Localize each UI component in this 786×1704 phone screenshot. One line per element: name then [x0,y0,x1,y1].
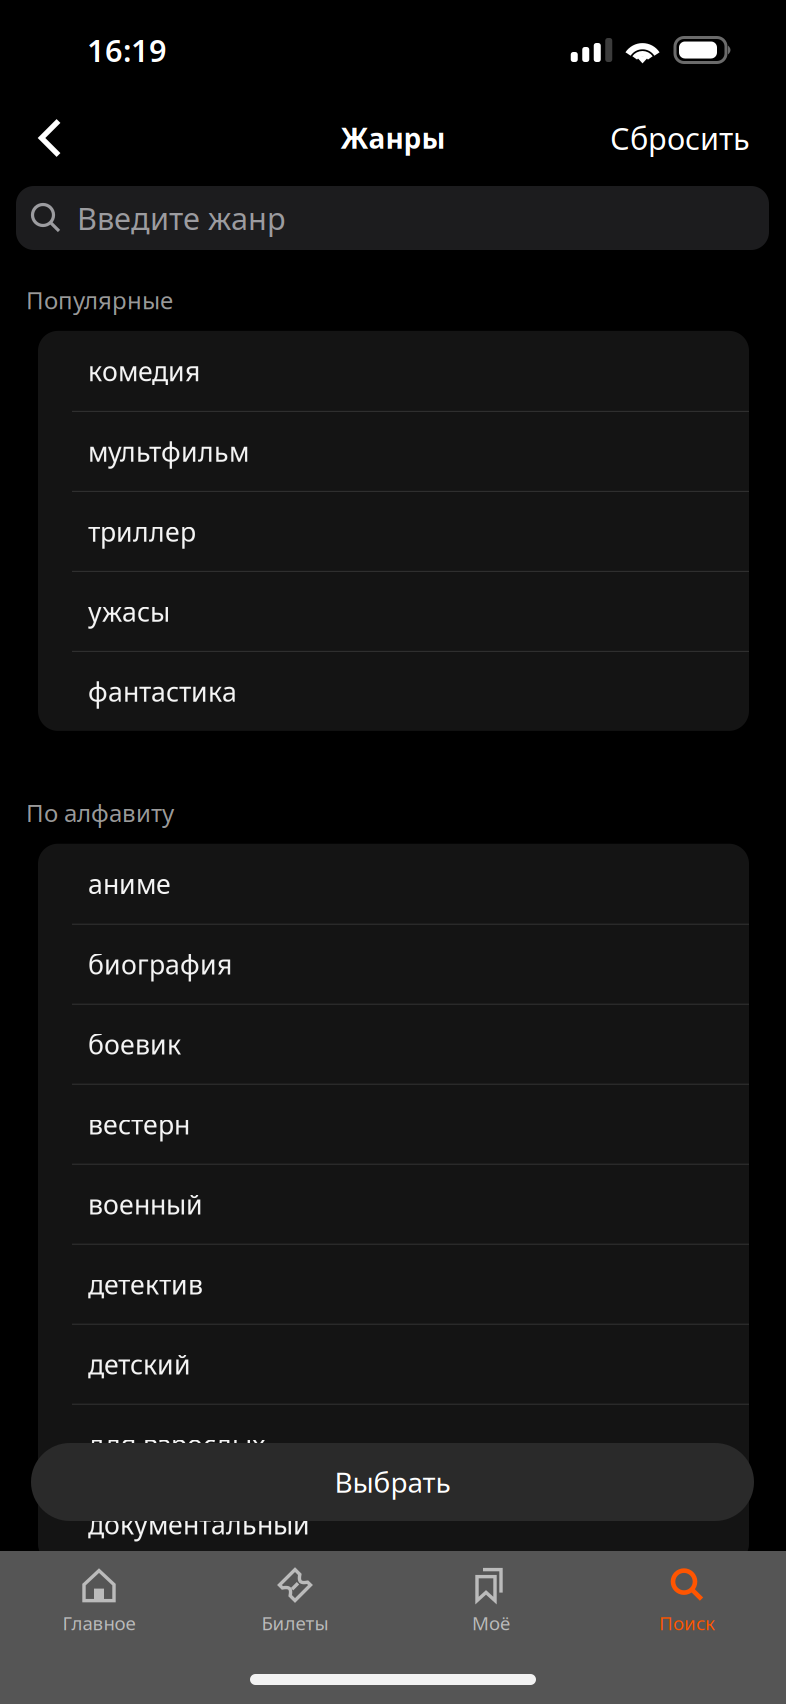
staticText: Введите жанр [77,198,286,238]
staticText: По алфавиту [26,797,174,829]
staticText: детский [88,1346,191,1382]
staticText: Сбросить [610,118,750,158]
staticText: Выбрать [334,1463,450,1501]
button[interactable]: документальный [38,1484,749,1564]
button[interactable]: биография [38,924,749,1004]
staticText: для взрослых [88,1426,266,1462]
button[interactable]: детектив [38,1244,749,1324]
button[interactable]: фантастика [38,651,749,731]
button[interactable]: ужасы [38,571,749,651]
button[interactable]: мультфильм [38,411,749,491]
staticText: Билеты [261,1611,328,1635]
button[interactable]: Введите жанр [16,186,769,250]
button[interactable]: Главное [1,1551,197,1651]
button[interactable]: Моё [393,1551,589,1651]
staticText: ужасы [88,594,170,629]
staticText: Моё [472,1611,510,1635]
button[interactable]: триллер [38,491,749,571]
staticText: документальный [88,1506,310,1542]
button[interactable]: аниме [38,844,749,924]
staticText: Главное [62,1611,135,1635]
staticText: Жанры [340,119,445,157]
button[interactable]: Сбросить [610,102,750,174]
button[interactable]: боевик [38,1004,749,1084]
staticText: вестерн [88,1106,190,1142]
button[interactable]: Поиск [589,1551,785,1651]
staticText: 16:19 [87,30,167,70]
staticText: Поиск [659,1611,715,1635]
staticText: Популярные [26,284,173,316]
button[interactable]: Back [18,102,82,174]
button[interactable]: Билеты [197,1551,393,1651]
button[interactable]: вестерн [38,1084,749,1164]
staticText: детектив [88,1266,203,1302]
button[interactable]: для взрослых [38,1404,749,1484]
staticText: комедия [88,353,200,389]
button[interactable]: комедия [38,331,749,411]
staticText: военный [88,1186,203,1222]
button[interactable]: военный [38,1164,749,1244]
button[interactable]: детский [38,1324,749,1404]
staticText: мультфильм [88,434,249,469]
staticText: аниме [88,866,171,901]
staticText: боевик [88,1026,181,1062]
staticText: фантастика [88,674,237,709]
button[interactable]: Выбрать [31,1443,754,1521]
staticText: триллер [88,514,196,549]
staticText: биография [88,946,232,982]
